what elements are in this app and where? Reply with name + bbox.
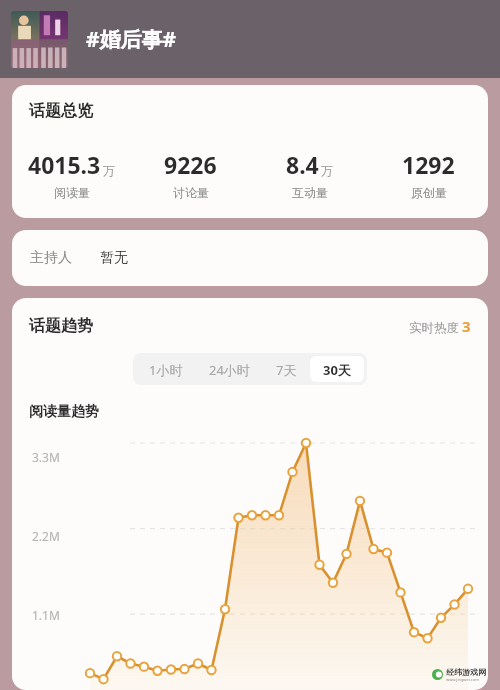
- button[interactable]: 实时热度: [409, 316, 471, 336]
- button[interactable]: 30天: [310, 356, 364, 382]
- staticText: 30天: [323, 361, 351, 377]
- staticText: 阅读量趋势: [29, 403, 99, 421]
- staticText: 原创量: [411, 185, 447, 200]
- staticText: 3.3M: [32, 449, 60, 465]
- button[interactable]: 24小时: [196, 356, 263, 382]
- staticText: 1292: [402, 149, 455, 180]
- button[interactable]: 7天: [263, 356, 310, 382]
- staticText: 24小时: [209, 361, 250, 377]
- button[interactable]: 1292: [369, 149, 488, 200]
- staticText: 2.2M: [32, 528, 60, 544]
- staticText: 实时热度: [409, 320, 459, 336]
- staticText: 万: [321, 163, 333, 178]
- staticText: 1小时: [149, 361, 183, 377]
- button[interactable]: 主持人: [12, 230, 488, 286]
- staticText: 话题趋势: [29, 316, 93, 336]
- staticText: www.jingwei.com: [446, 677, 479, 682]
- staticText: 讨论量: [173, 185, 209, 200]
- staticText: 3: [462, 316, 471, 336]
- staticText: 8.4: [286, 149, 319, 180]
- staticText: 暂无: [100, 249, 128, 267]
- button[interactable]: 9226: [131, 149, 250, 200]
- button[interactable]: 话题总览: [12, 85, 488, 218]
- staticText: 1.1M: [32, 607, 60, 623]
- staticText: 阅读量: [54, 185, 90, 200]
- staticText: #婚后事#: [86, 25, 177, 54]
- staticText: 7天: [276, 361, 297, 377]
- staticText: 9226: [164, 149, 217, 180]
- staticText: 互动量: [292, 185, 328, 200]
- button[interactable]: 8.4: [250, 149, 369, 200]
- staticText: 万: [103, 163, 115, 178]
- staticText: 4015.3: [28, 149, 101, 180]
- button[interactable]: 4015.3: [12, 149, 131, 200]
- staticText: 经纬游戏网: [446, 667, 486, 677]
- button[interactable]: 1小时: [136, 356, 196, 382]
- staticText: 主持人: [30, 249, 72, 267]
- button[interactable]: Topic cover: [11, 11, 68, 68]
- staticText: 话题总览: [29, 101, 93, 121]
